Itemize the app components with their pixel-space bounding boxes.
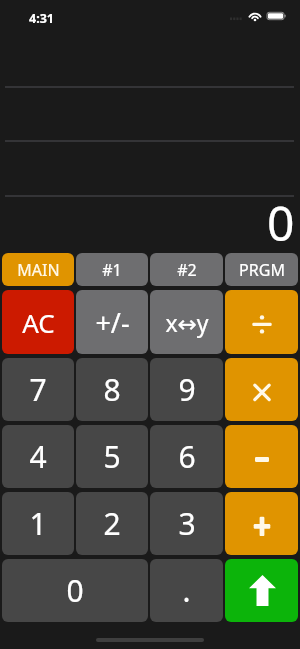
button[interactable]: . <box>150 559 223 622</box>
staticText: 3 <box>178 503 196 544</box>
button[interactable]: Minus <box>225 425 298 488</box>
button[interactable]: PRGM <box>225 253 298 286</box>
staticText: 7 <box>29 369 47 410</box>
staticText: 0 <box>66 570 84 611</box>
staticText: #2 <box>177 259 197 281</box>
staticText: . <box>182 570 191 611</box>
staticText: 8 <box>103 369 121 410</box>
staticText: 5 <box>103 436 121 477</box>
button[interactable]: 7 <box>2 358 74 421</box>
staticText: 4:31 <box>29 10 54 27</box>
button[interactable]: AC <box>2 290 74 354</box>
staticText: 0 <box>267 190 295 255</box>
button[interactable]: Enter <box>225 559 298 622</box>
staticText: 1 <box>29 503 47 544</box>
button[interactable]: 6 <box>150 425 223 488</box>
staticText: 9 <box>178 369 196 410</box>
staticText: AC <box>22 305 55 340</box>
button[interactable]: MAIN <box>2 253 74 286</box>
button[interactable]: Divide <box>225 290 298 354</box>
button[interactable]: #1 <box>76 253 148 286</box>
button[interactable]: +/- <box>76 290 148 354</box>
staticText: PRGM <box>239 259 285 281</box>
staticText: #1 <box>102 259 122 281</box>
staticText: 6 <box>178 436 196 477</box>
staticText: x↔y <box>165 307 209 338</box>
button[interactable]: 8 <box>76 358 148 421</box>
button[interactable]: 0 <box>2 559 148 622</box>
button[interactable]: #2 <box>150 253 223 286</box>
staticText: 4 <box>29 436 47 477</box>
button[interactable]: 5 <box>76 425 148 488</box>
staticText: 2 <box>103 503 121 544</box>
button[interactable]: 2 <box>76 492 148 555</box>
staticText: MAIN <box>17 259 60 281</box>
staticText: +/- <box>95 304 130 341</box>
button[interactable]: Plus <box>225 492 298 555</box>
button[interactable]: Multiply <box>225 358 298 421</box>
button[interactable]: 3 <box>150 492 223 555</box>
button[interactable]: 4 <box>2 425 74 488</box>
button[interactable]: 1 <box>2 492 74 555</box>
button[interactable]: 9 <box>150 358 223 421</box>
button[interactable]: x↔y <box>150 290 223 354</box>
